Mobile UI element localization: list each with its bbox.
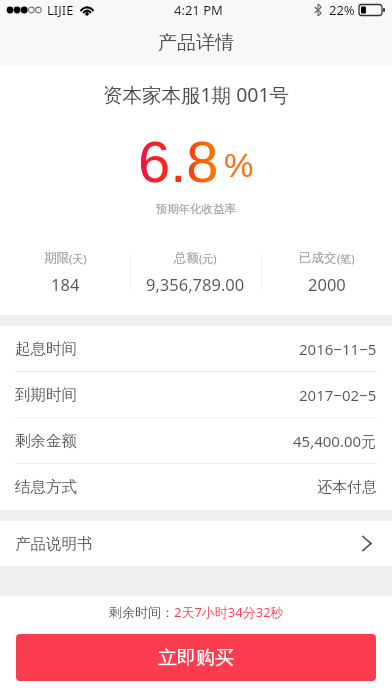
staticText: 2017−02−5 [299, 385, 377, 405]
staticText: 4:21 PM [174, 1, 223, 19]
button[interactable]: 产品说明书 [0, 521, 392, 566]
staticText: (笔) [337, 251, 355, 266]
staticText: 立即购买 [158, 646, 234, 670]
staticText: 已成交 [299, 250, 337, 266]
staticText: 剩余时间： [109, 604, 174, 620]
staticText: 总额 [174, 250, 199, 266]
button[interactable]: 立即购买 [16, 634, 376, 681]
staticText: (天) [69, 251, 87, 266]
staticText: 起息时间 [15, 339, 77, 359]
staticText: 6.8 [138, 129, 219, 194]
staticText: 产品说明书 [15, 534, 93, 554]
staticText: 期限 [44, 250, 69, 266]
staticText: 结息方式 [15, 477, 77, 497]
staticText: % [224, 147, 254, 184]
staticText: 9,356,789.00 [146, 273, 245, 295]
staticText: 剩余金额 [15, 431, 77, 451]
button[interactable]: 到期时间 [0, 372, 392, 418]
button[interactable]: 起息时间 [0, 326, 392, 372]
staticText: 资本家本服1期 001号 [0, 81, 392, 108]
staticText: (元) [199, 251, 217, 266]
staticText: LIJIE [47, 1, 74, 19]
other: 查看产品说明书 [356, 521, 392, 566]
staticText: 产品详情 [158, 31, 234, 55]
staticText: 2016−11−5 [299, 339, 377, 359]
staticText: 到期时间 [15, 385, 77, 405]
staticText: 184 [51, 273, 80, 295]
button[interactable]: 剩余金额 [0, 418, 392, 464]
staticText: 2天7小时34分32秒 [174, 603, 284, 621]
staticText: 45,400.00元 [293, 431, 377, 451]
staticText: 预期年化收益率 [0, 202, 392, 216]
button[interactable]: 结息方式 [0, 464, 392, 510]
staticText: 2000 [308, 273, 346, 295]
staticText: 22% [329, 1, 355, 19]
staticText: 还本付息 [317, 478, 377, 497]
